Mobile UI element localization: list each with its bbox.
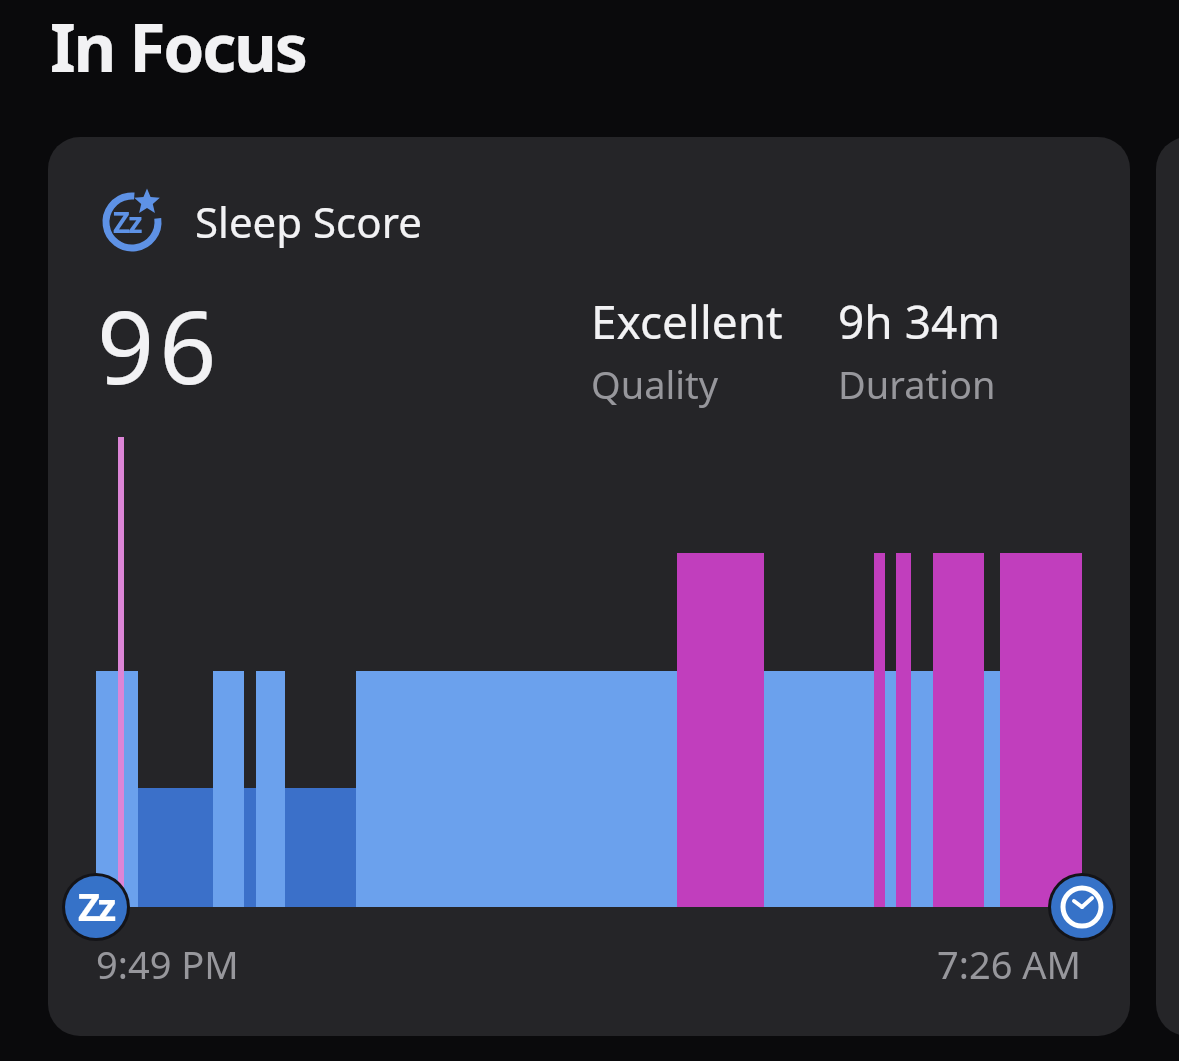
staticText: 7:26 AM (937, 938, 1082, 990)
staticText: Quality (591, 358, 719, 410)
staticText: In Focus (50, 1, 306, 91)
staticText: Zz (113, 202, 142, 241)
staticText: 96 (97, 277, 222, 413)
staticText: 9h 34m (838, 290, 1001, 353)
staticText: Zz (78, 880, 114, 932)
staticText: Sleep Score (195, 193, 422, 250)
staticText: 9:49 PM (96, 938, 239, 990)
staticText: Duration (838, 358, 996, 410)
button[interactable]: Zz (48, 137, 1130, 1036)
button[interactable] (1156, 137, 1179, 1036)
staticText: Excellent (591, 290, 783, 353)
